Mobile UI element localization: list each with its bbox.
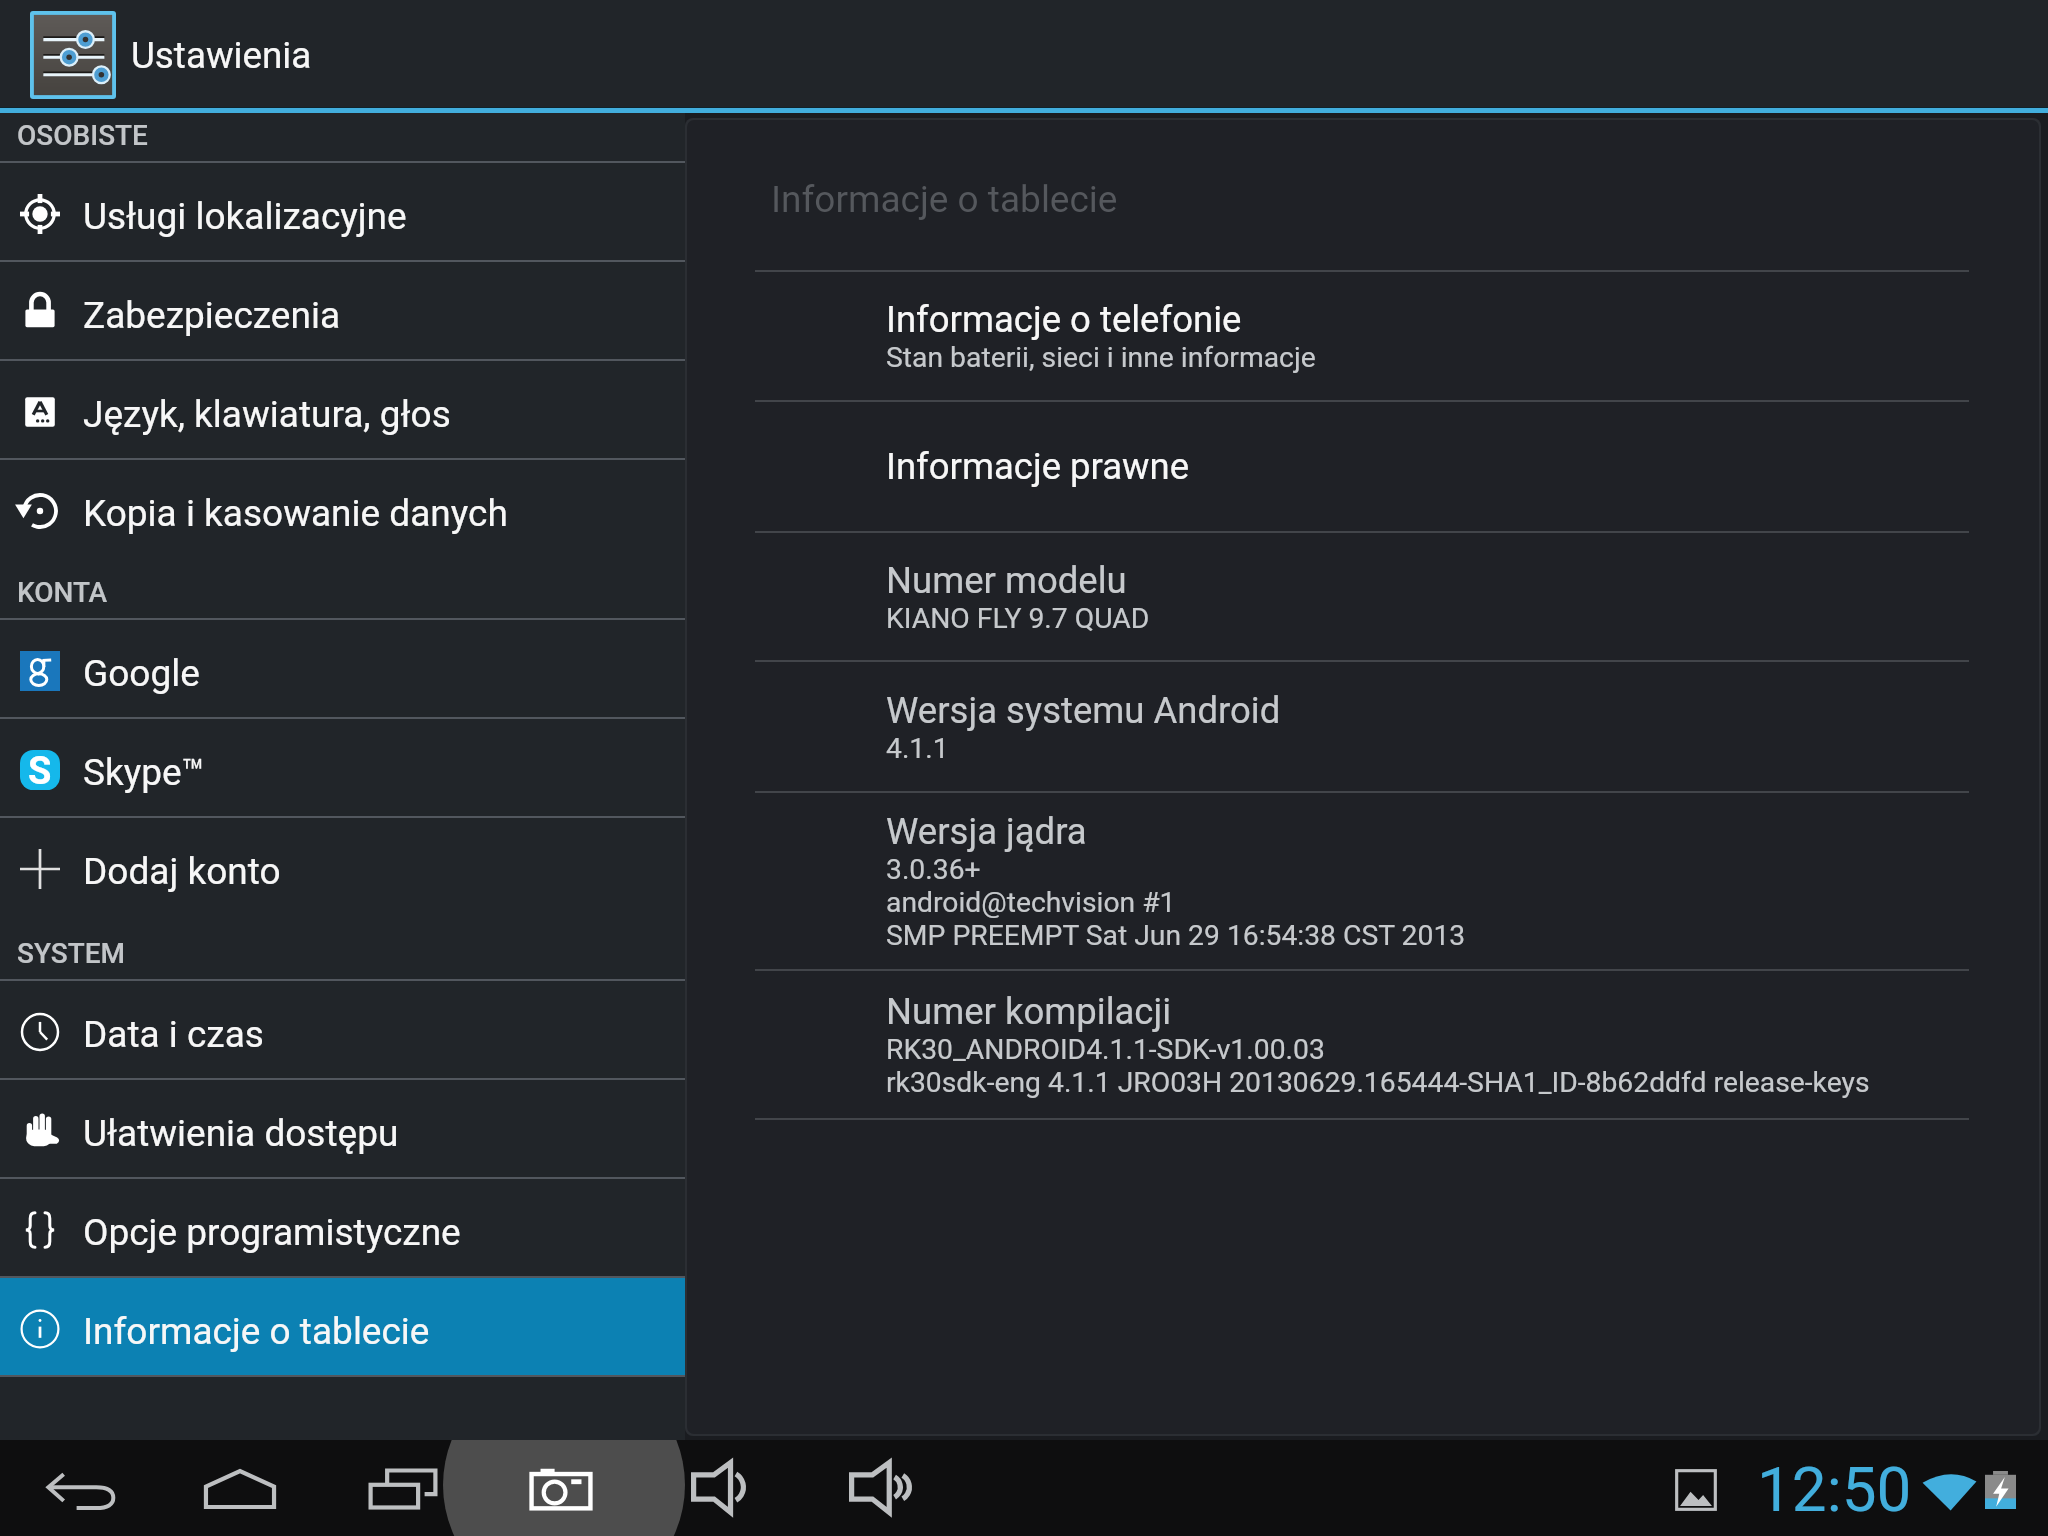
- staticText: Kopia i kasowanie danych: [83, 492, 508, 535]
- staticText: Usługi lokalizacyjne: [83, 195, 407, 238]
- staticText: 12:50: [1757, 1453, 1912, 1526]
- button[interactable]: Język, klawiatura, głos: [0, 361, 685, 458]
- button[interactable]: Back: [22, 1440, 138, 1536]
- button[interactable]: Recent apps: [343, 1440, 463, 1536]
- button[interactable]: Informacje o telefonie: [687, 272, 2039, 400]
- staticText: Google: [83, 652, 200, 695]
- staticText: Data i czas: [83, 1013, 264, 1056]
- button[interactable]: Data i czas: [0, 981, 685, 1078]
- staticText: 3.0.36+ android@techvision #1 SMP PREEMP…: [886, 853, 1466, 952]
- staticText: OSOBISTE: [17, 119, 148, 152]
- button[interactable]: Zabezpieczenia: [0, 262, 685, 359]
- button[interactable]: Volume down: [667, 1440, 770, 1536]
- button[interactable]: Screenshot: [505, 1440, 617, 1536]
- staticText: Dodaj konto: [83, 850, 281, 893]
- staticText: SYSTEM: [17, 937, 126, 970]
- button[interactable]: Wersja systemu Android: [687, 662, 2039, 791]
- staticText: 4.1.1: [886, 732, 949, 765]
- staticText: Wersja jądra: [886, 810, 1087, 853]
- button[interactable]: Informacje o tablecie: [0, 1278, 685, 1375]
- button[interactable]: Numer modelu: [687, 533, 2039, 660]
- staticText: Skype™: [83, 751, 205, 794]
- staticText: Ustawienia: [131, 34, 312, 77]
- staticText: Ułatwienia dostępu: [83, 1112, 399, 1155]
- staticText: RK30_ANDROID4.1.1-SDK-v1.00.03 rk30sdk-e…: [886, 1033, 1870, 1099]
- staticText: Numer kompilacji: [886, 990, 1172, 1033]
- button[interactable]: Dodaj konto: [0, 818, 685, 915]
- staticText: Opcje programistyczne: [83, 1211, 461, 1254]
- staticText: Stan baterii, sieci i inne informacje: [886, 341, 1316, 374]
- button[interactable]: Wersja jądra: [687, 793, 2039, 969]
- staticText: Numer modelu: [886, 559, 1127, 602]
- staticText: Wersja systemu Android: [886, 689, 1281, 732]
- button[interactable]: Numer kompilacji: [687, 971, 2039, 1118]
- staticText: KONTA: [17, 576, 108, 609]
- button[interactable]: Google: [0, 620, 685, 717]
- staticText: Informacje o tablecie: [771, 178, 1118, 221]
- button[interactable]: Screenshot saved: [1651, 1440, 1741, 1536]
- staticText: Informacje o telefonie: [886, 298, 1242, 341]
- button[interactable]: Home: [179, 1440, 301, 1536]
- button[interactable]: Volume up: [825, 1440, 936, 1536]
- staticText: S: [28, 750, 52, 789]
- staticText: Zabezpieczenia: [83, 294, 341, 337]
- staticText: KIANO FLY 9.7 QUAD: [886, 602, 1150, 635]
- button[interactable]: Opcje programistyczne: [0, 1179, 685, 1276]
- button[interactable]: Informacje prawne: [687, 402, 2039, 531]
- button[interactable]: S: [0, 719, 685, 816]
- staticText: Informacje prawne: [886, 445, 1190, 488]
- button[interactable]: Usługi lokalizacyjne: [0, 163, 685, 260]
- staticText: Informacje o tablecie: [83, 1310, 430, 1353]
- button[interactable]: Kopia i kasowanie danych: [0, 460, 685, 557]
- button[interactable]: Ułatwienia dostępu: [0, 1080, 685, 1177]
- staticText: Język, klawiatura, głos: [83, 393, 451, 436]
